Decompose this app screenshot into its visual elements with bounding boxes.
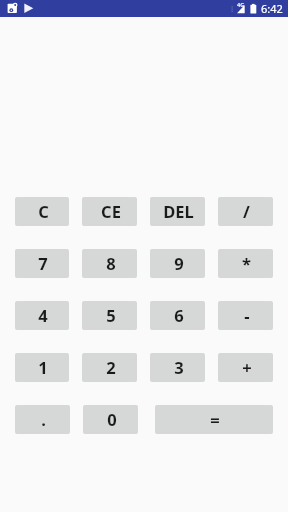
button[interactable]: 9 — [150, 249, 205, 278]
staticText: DEL — [163, 200, 194, 222]
button[interactable]: 5 — [82, 301, 137, 330]
button[interactable]: - — [218, 301, 273, 330]
staticText: 0 — [107, 408, 117, 430]
staticText: / — [243, 200, 250, 222]
staticText: = — [210, 408, 220, 430]
button[interactable]: / — [218, 197, 273, 226]
button[interactable]: DEL — [150, 197, 205, 226]
button[interactable]: . — [15, 405, 70, 434]
staticText: 7 — [38, 252, 48, 274]
button[interactable]: 7 — [15, 249, 69, 278]
button[interactable]: C — [15, 197, 69, 226]
button[interactable]: 8 — [82, 249, 137, 278]
staticText: 6 — [174, 304, 184, 326]
staticText: 4 — [38, 304, 48, 326]
button[interactable]: CE — [82, 197, 137, 226]
staticText: 4G — [237, 1, 245, 8]
button[interactable]: 1 — [15, 353, 69, 382]
staticText: 6:42 — [261, 1, 283, 16]
staticText: 8 — [106, 252, 116, 274]
staticText: 9 — [174, 252, 184, 274]
button[interactable]: = — [155, 405, 273, 434]
staticText: * — [242, 252, 251, 274]
staticText: . — [41, 408, 46, 430]
staticText: CE — [101, 200, 121, 222]
staticText: 3 — [174, 356, 184, 378]
other: Notifications — [0, 0, 288, 17]
staticText: 2 — [106, 356, 116, 378]
button[interactable]: * — [218, 249, 273, 278]
button[interactable]: 6 — [150, 301, 205, 330]
staticText: - — [244, 304, 250, 326]
button[interactable]: 4 — [15, 301, 69, 330]
button[interactable]: 0 — [83, 405, 138, 434]
button[interactable]: 2 — [82, 353, 137, 382]
button[interactable]: + — [218, 353, 273, 382]
staticText: 5 — [106, 304, 116, 326]
staticText: C — [38, 200, 49, 222]
staticText: 1 — [38, 356, 48, 378]
button[interactable]: 3 — [150, 353, 205, 382]
staticText: + — [242, 356, 252, 378]
